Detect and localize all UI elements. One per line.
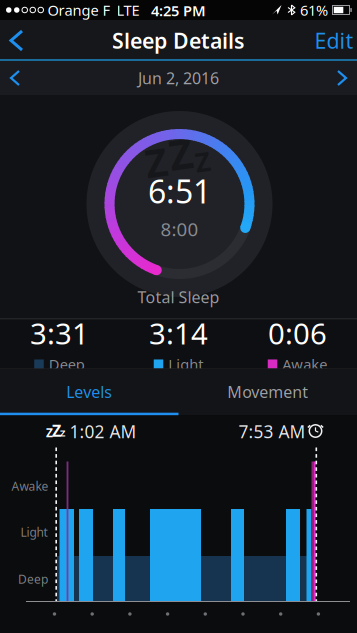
staticText: 3:31 <box>30 313 89 352</box>
staticText: 6:51 <box>148 170 211 212</box>
staticText: Edit <box>314 26 353 55</box>
staticText: 61% <box>300 0 328 20</box>
staticText: Movement <box>227 381 308 402</box>
staticText: Total Sleep <box>137 286 219 308</box>
staticText: Z <box>145 136 167 188</box>
staticText: Awake <box>11 478 48 494</box>
staticText: 4:25 PM <box>151 1 206 20</box>
staticText: Z <box>169 126 193 181</box>
staticText: Awake <box>282 354 327 374</box>
button[interactable]: Levels <box>0 370 178 413</box>
button[interactable]: Previous day <box>1 61 29 95</box>
staticText: Levels <box>66 381 112 402</box>
button[interactable]: Back <box>2 21 42 60</box>
staticText: Z <box>60 427 65 439</box>
staticText: 0:06 <box>268 313 327 352</box>
staticText: Deep <box>18 571 48 587</box>
staticText: 3:14 <box>149 313 208 352</box>
button[interactable]: Edit <box>304 16 357 65</box>
staticText: Z <box>52 420 61 441</box>
staticText: Z <box>195 144 210 179</box>
staticText: Light <box>168 354 203 374</box>
staticText: Orange F <box>47 0 110 20</box>
staticText: LTE <box>116 0 139 20</box>
button[interactable]: Movement <box>178 370 357 413</box>
staticText: 7:53 AM <box>238 420 305 443</box>
button[interactable]: Next day <box>328 61 356 95</box>
staticText: Deep <box>49 354 85 374</box>
staticText: Z <box>46 424 53 440</box>
staticText: Light <box>20 524 47 540</box>
staticText: Sleep Details <box>112 26 245 55</box>
staticText: 8:00 <box>160 217 198 241</box>
staticText: 1:02 AM <box>69 420 136 443</box>
staticText: Jun 2, 2016 <box>138 67 219 89</box>
